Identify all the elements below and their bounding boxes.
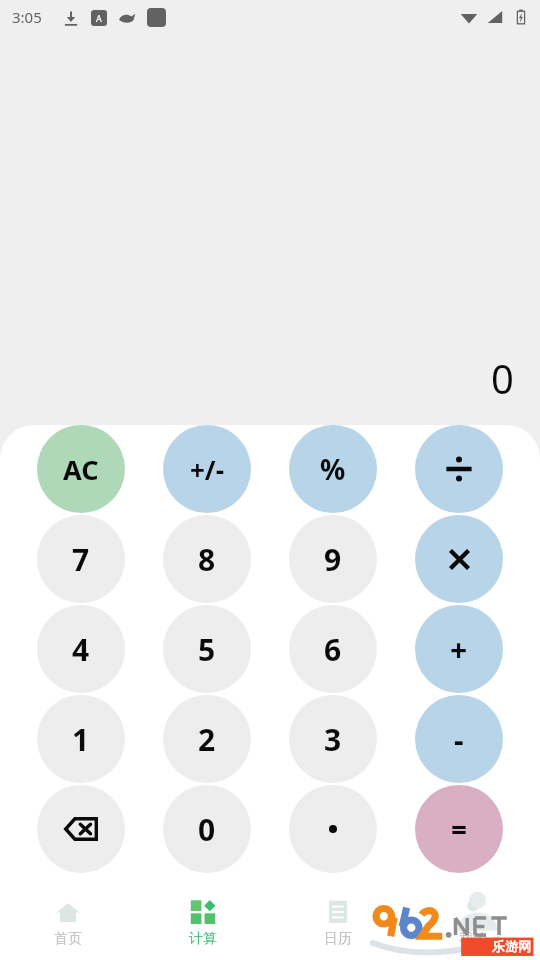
staticText: 0 (491, 351, 514, 405)
button[interactable]: 6 (289, 605, 377, 693)
staticText: 3 (324, 719, 342, 760)
button[interactable]: 0 (163, 785, 251, 873)
button[interactable]: 日历 (270, 890, 405, 960)
staticText: A (96, 12, 102, 24)
button[interactable]: - (415, 695, 503, 783)
button[interactable]: 3 (289, 695, 377, 783)
button[interactable] (289, 785, 377, 873)
button[interactable]: 4 (37, 605, 125, 693)
staticText: = (451, 810, 468, 848)
button[interactable]: % (289, 425, 377, 513)
staticText: 8 (198, 539, 216, 580)
button[interactable]: 7 (37, 515, 125, 603)
staticText: AC (63, 451, 99, 488)
staticText: 1 (72, 719, 90, 760)
button[interactable] (415, 425, 503, 513)
button[interactable]: 2 (163, 695, 251, 783)
staticText: 首页 (54, 930, 82, 948)
staticText: 6 (324, 629, 342, 670)
staticText: + (450, 629, 468, 670)
button[interactable]: 首页 (0, 890, 135, 960)
staticText: 2 (198, 719, 216, 760)
button[interactable]: 我的 (405, 890, 540, 960)
staticText: % (320, 450, 346, 488)
staticText: 4 (72, 629, 90, 670)
staticText: 7 (72, 539, 90, 580)
staticText: 我的 (459, 930, 487, 948)
button[interactable]: + (415, 605, 503, 693)
staticText: 日历 (324, 930, 352, 948)
button[interactable]: 1 (37, 695, 125, 783)
staticText: 3:05 (12, 7, 42, 27)
button[interactable]: Backspace (37, 785, 125, 873)
button[interactable] (415, 515, 503, 603)
staticText: 9 (324, 539, 342, 580)
staticText: 乐游网 (492, 938, 531, 954)
button[interactable]: 9 (289, 515, 377, 603)
staticText: 0 (198, 809, 216, 850)
button[interactable]: = (415, 785, 503, 873)
button[interactable]: 计算 (135, 890, 270, 960)
staticText: 5 (198, 629, 216, 670)
button[interactable]: 8 (163, 515, 251, 603)
button[interactable]: +/- (163, 425, 251, 513)
button[interactable]: AC (37, 425, 125, 513)
staticText: 计算 (189, 930, 217, 948)
staticText: +/- (190, 452, 224, 487)
button[interactable]: 5 (163, 605, 251, 693)
staticText: - (454, 719, 464, 760)
